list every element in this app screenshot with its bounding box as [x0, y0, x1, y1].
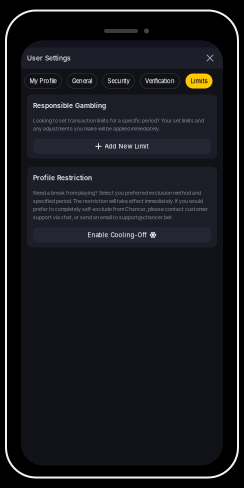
staticText: User Settings [27, 54, 71, 62]
button[interactable]: Close [203, 51, 217, 65]
button[interactable]: Security [102, 73, 134, 88]
staticText: Limits [190, 77, 207, 85]
staticText: Responsible Gambling [33, 101, 106, 110]
button[interactable]: Add New Limit [33, 139, 211, 154]
staticText: Looking to set transaction limits for a … [33, 118, 204, 132]
staticText: Verification [145, 77, 175, 85]
staticText: Enable Cooling-Off [87, 231, 146, 239]
staticText: Add New Limit [104, 143, 148, 150]
staticText: Security [107, 77, 129, 85]
button[interactable]: Verification [140, 73, 180, 88]
staticText: General [72, 77, 92, 85]
staticText: Profile Restriction [33, 174, 92, 182]
button[interactable]: My Profile [24, 73, 61, 88]
staticText: My Profile [29, 77, 56, 85]
button[interactable]: General [67, 73, 97, 88]
staticText: Need a break from playing? Select you pr… [33, 190, 208, 220]
button[interactable]: Limits [185, 73, 212, 88]
button[interactable]: Enable Cooling-Off [33, 227, 211, 242]
